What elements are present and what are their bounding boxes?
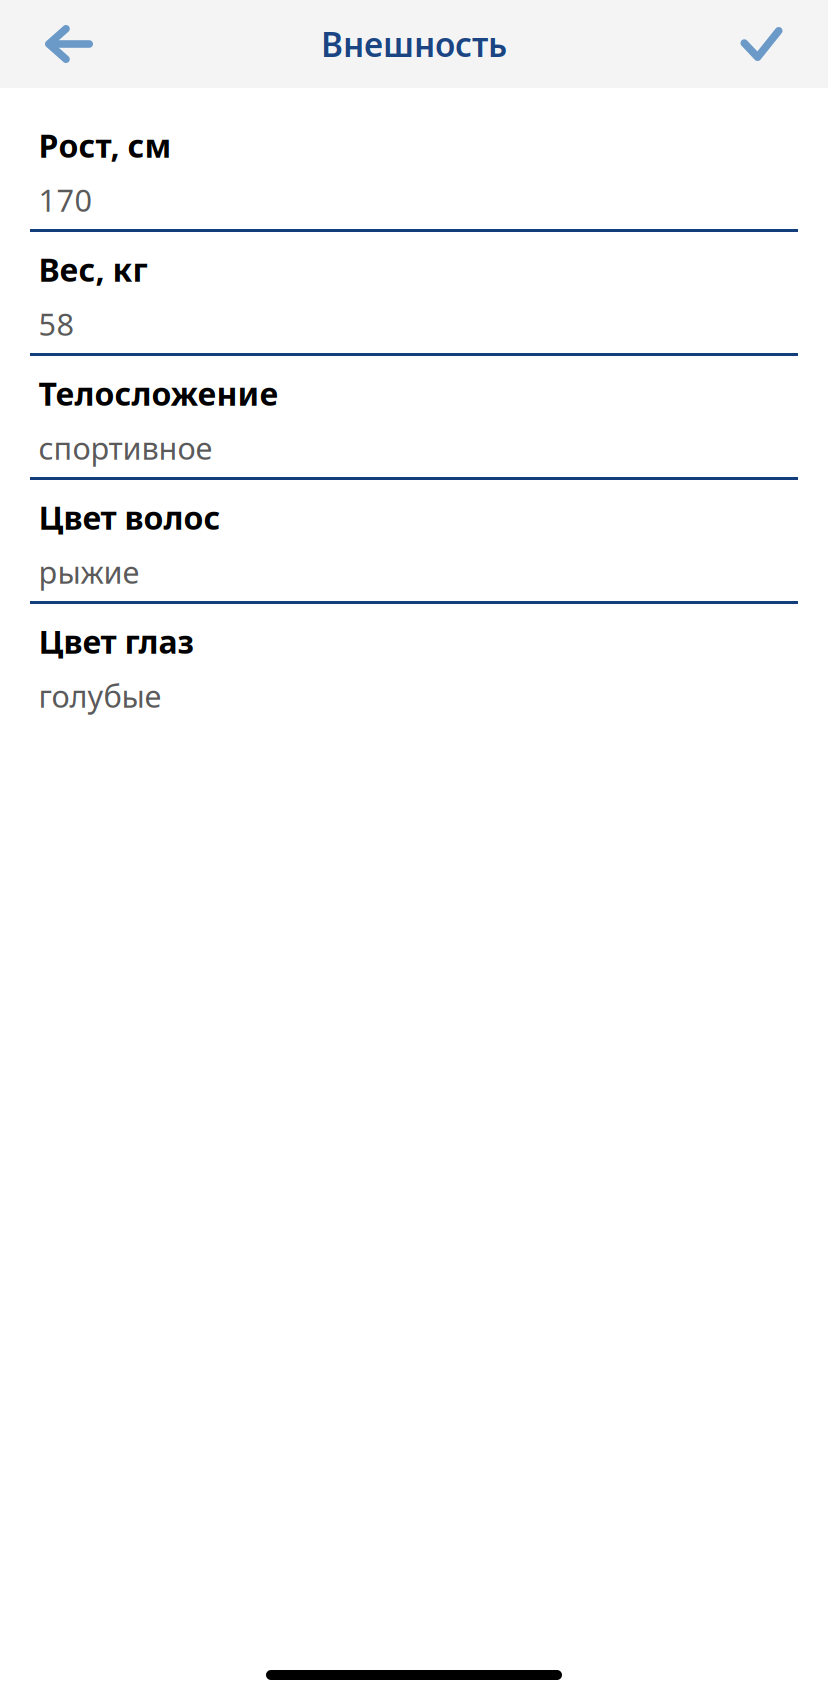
staticText: Внешность <box>321 22 507 66</box>
staticText: спортивное <box>38 427 212 468</box>
button[interactable]: Назад <box>0 0 109 88</box>
staticText: Цвет глаз <box>38 620 193 662</box>
button[interactable]: Рост, см: 170 <box>0 108 828 232</box>
button[interactable]: Вес, кг: 58 <box>0 232 828 356</box>
staticText: 58 <box>38 303 74 344</box>
button[interactable]: Сохранить <box>724 0 828 88</box>
staticText: Вес, кг <box>38 248 147 290</box>
button[interactable]: Цвет волос: рыжие <box>0 480 828 604</box>
staticText: Рост, см <box>38 124 171 166</box>
staticText: рыжие <box>38 551 139 592</box>
button[interactable]: Телосложение: спортивное <box>0 356 828 480</box>
button[interactable]: Цвет глаз: голубые <box>0 604 828 728</box>
staticText: Телосложение <box>38 372 278 414</box>
staticText: голубые <box>38 675 161 716</box>
staticText: Цвет волос <box>38 496 220 538</box>
staticText: 170 <box>38 179 92 220</box>
